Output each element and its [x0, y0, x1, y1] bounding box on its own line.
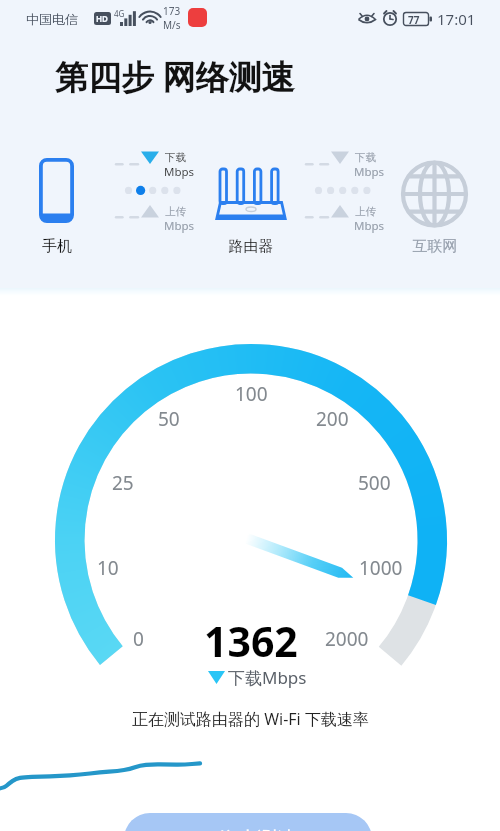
staticText: 手机: [34, 237, 80, 256]
staticText: M/s: [163, 18, 181, 32]
staticText: 下载Mbps: [228, 666, 307, 689]
staticText: 上传: [165, 205, 186, 218]
staticText: 50: [158, 406, 180, 432]
staticText: 第四步 网络测速: [55, 54, 295, 99]
staticText: 100: [235, 381, 268, 407]
staticText: 77: [408, 13, 420, 27]
staticText: Mbps: [354, 164, 385, 180]
staticText: 上传: [355, 205, 376, 218]
staticText: Mbps: [164, 218, 195, 234]
staticText: 1362: [204, 613, 298, 665]
staticText: 2000: [325, 626, 369, 652]
staticText: 中国电信: [26, 11, 78, 27]
staticText: 1000: [359, 555, 403, 581]
staticText: 10: [97, 555, 119, 581]
staticText: 4G: [114, 8, 125, 19]
staticText: Mbps: [164, 164, 195, 180]
staticText: 路由器: [220, 237, 282, 256]
staticText: 200: [316, 406, 349, 432]
staticText: 下载: [355, 151, 376, 164]
staticText: 停止测速: [217, 827, 297, 831]
staticText: 下载: [165, 151, 186, 164]
staticText: 0: [133, 626, 144, 652]
staticText: 173: [163, 4, 181, 18]
staticText: HD: [96, 13, 108, 24]
staticText: 17:01: [437, 9, 476, 29]
button[interactable]: 停止测速: [124, 813, 372, 831]
staticText: 500: [358, 470, 391, 496]
staticText: Mbps: [354, 218, 385, 234]
staticText: 正在测试路由器的 Wi-Fi 下载速率: [132, 708, 369, 730]
staticText: 互联网: [404, 237, 466, 256]
staticText: 25: [112, 470, 134, 496]
